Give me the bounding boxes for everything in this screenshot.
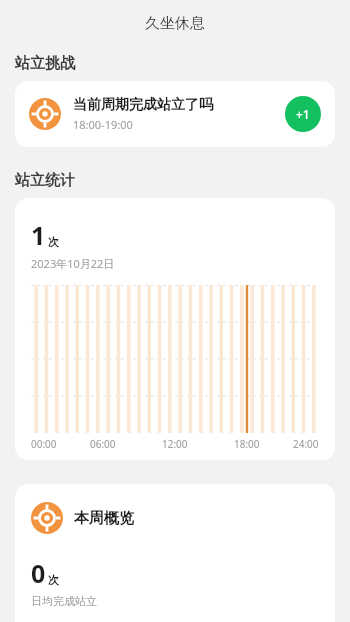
staticText: 本周概览: [74, 509, 134, 528]
button[interactable]: 1: [15, 198, 335, 460]
staticText: +1: [296, 106, 310, 122]
other: Stand target: [29, 98, 61, 130]
staticText: 站立统计: [15, 171, 75, 190]
staticText: 日均完成站立: [31, 594, 97, 608]
other: Stand target: [31, 502, 63, 534]
staticText: 12:00: [162, 437, 188, 453]
staticText: 次: [48, 573, 59, 587]
staticText: 24:00: [293, 437, 319, 453]
staticText: 站立挑战: [15, 54, 75, 73]
button[interactable]: Stand target: [15, 484, 335, 622]
staticText: 06:00: [90, 437, 116, 453]
button[interactable]: Add one standing record: [285, 96, 321, 132]
button[interactable]: Stand target: [15, 81, 335, 147]
staticText: 18:00: [234, 437, 260, 453]
staticText: 久坐休息: [145, 14, 205, 33]
staticText: 2023年10月22日: [31, 256, 115, 271]
staticText: 当前周期完成站立了吗: [73, 96, 213, 114]
staticText: 18:00-19:00: [73, 117, 133, 132]
staticText: 次: [48, 235, 59, 249]
staticText: 00:00: [31, 437, 57, 453]
staticText: 0: [31, 556, 46, 590]
staticText: 1: [31, 218, 46, 252]
